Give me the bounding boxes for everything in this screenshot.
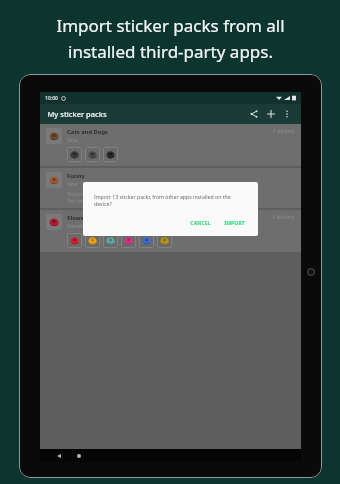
button[interactable]: More options bbox=[280, 107, 294, 121]
button[interactable]: IMPORT bbox=[220, 216, 249, 229]
staticText: 10:00 bbox=[45, 95, 58, 102]
staticText: My sticker packs bbox=[47, 109, 107, 119]
staticText: 6 stickers bbox=[272, 214, 295, 221]
button[interactable]: Funny bbox=[40, 168, 301, 208]
button[interactable] bbox=[157, 233, 172, 248]
button[interactable]: Flowers bbox=[40, 210, 301, 252]
staticText: Funny bbox=[67, 172, 85, 180]
button[interactable]: Add sticker pack bbox=[264, 107, 278, 121]
button[interactable] bbox=[121, 233, 136, 248]
button[interactable] bbox=[139, 233, 154, 248]
button[interactable]: Share bbox=[247, 107, 261, 121]
button[interactable] bbox=[103, 233, 118, 248]
staticText: IMPORT bbox=[224, 219, 245, 226]
button[interactable]: Cats and Dogs bbox=[40, 124, 301, 166]
staticText: Empty or stickers bbox=[67, 191, 105, 197]
staticText: CANCEL bbox=[190, 219, 211, 226]
button[interactable] bbox=[85, 233, 100, 248]
button[interactable]: Import 13 sticker packs from other apps … bbox=[83, 182, 258, 236]
button[interactable]: Back bbox=[53, 450, 64, 461]
staticText: Import sticker packs from all bbox=[56, 14, 285, 37]
staticText: installed third-party apps. bbox=[68, 40, 273, 63]
button[interactable] bbox=[67, 233, 82, 248]
staticText: Daniele bbox=[67, 223, 85, 230]
staticText: Flowers bbox=[67, 214, 90, 222]
button[interactable]: Home bbox=[73, 450, 84, 461]
button[interactable]: CANCEL bbox=[186, 216, 215, 229]
staticText: Tap here to open the pack details and ad… bbox=[67, 198, 187, 204]
button[interactable] bbox=[85, 147, 100, 162]
staticText: Import 13 sticker packs from other apps … bbox=[94, 193, 247, 207]
button[interactable] bbox=[67, 147, 82, 162]
staticText: 3 stickers bbox=[272, 128, 295, 135]
button[interactable] bbox=[103, 147, 118, 162]
staticText: Cats and Dogs bbox=[67, 128, 108, 136]
staticText: Sina bbox=[67, 137, 77, 144]
staticText: Sina bbox=[67, 181, 77, 188]
